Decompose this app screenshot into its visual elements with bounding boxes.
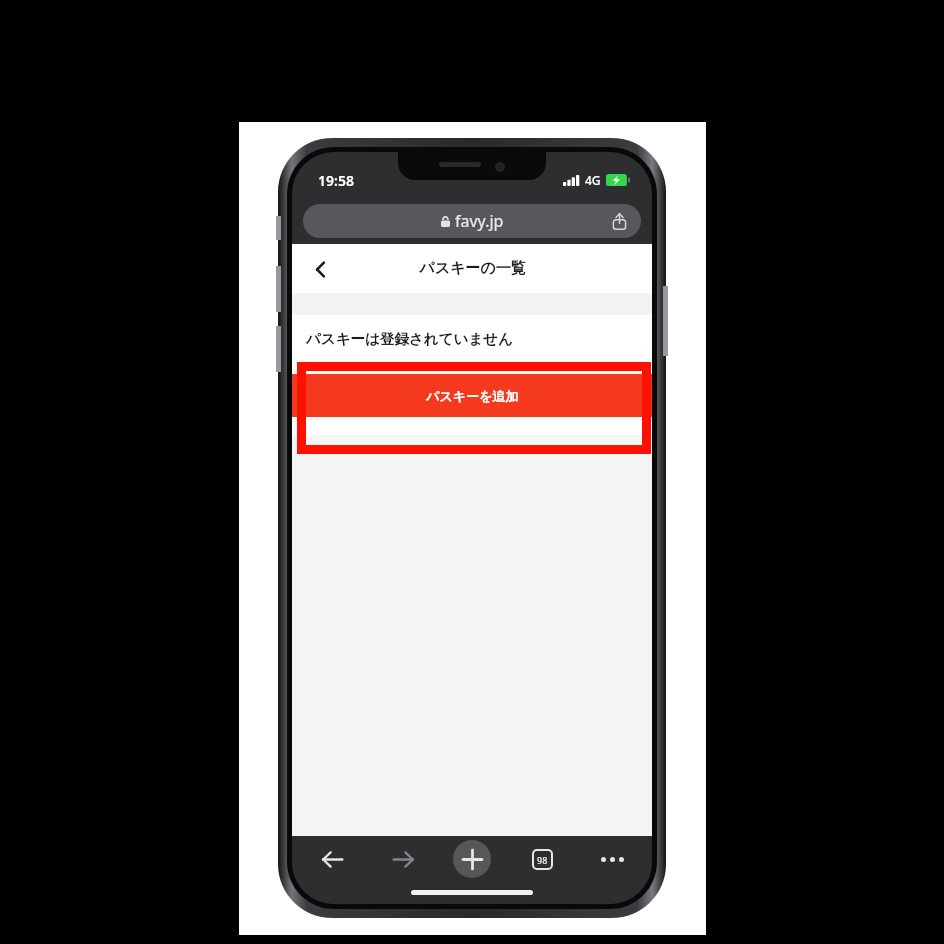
button[interactable]: favy.jp bbox=[303, 204, 641, 238]
staticText: 4G bbox=[585, 172, 601, 188]
button[interactable]: Tabs bbox=[522, 839, 562, 879]
button[interactable]: Back bbox=[312, 839, 352, 879]
staticText: favy.jp bbox=[455, 210, 504, 232]
staticText: パスキーを追加 bbox=[426, 388, 519, 404]
button[interactable]: Forward bbox=[383, 839, 423, 879]
button[interactable]: Back bbox=[302, 251, 338, 287]
staticText: 19:58 bbox=[318, 171, 354, 190]
button[interactable]: パスキーを追加 bbox=[292, 374, 652, 417]
button[interactable]: New tab bbox=[453, 840, 491, 878]
button[interactable]: More bbox=[592, 839, 632, 879]
staticText: パスキーの一覧 bbox=[419, 259, 526, 278]
staticText: 98 bbox=[537, 854, 548, 866]
staticText: パスキーは登録されていません bbox=[306, 330, 513, 348]
button[interactable]: Share bbox=[606, 208, 632, 234]
